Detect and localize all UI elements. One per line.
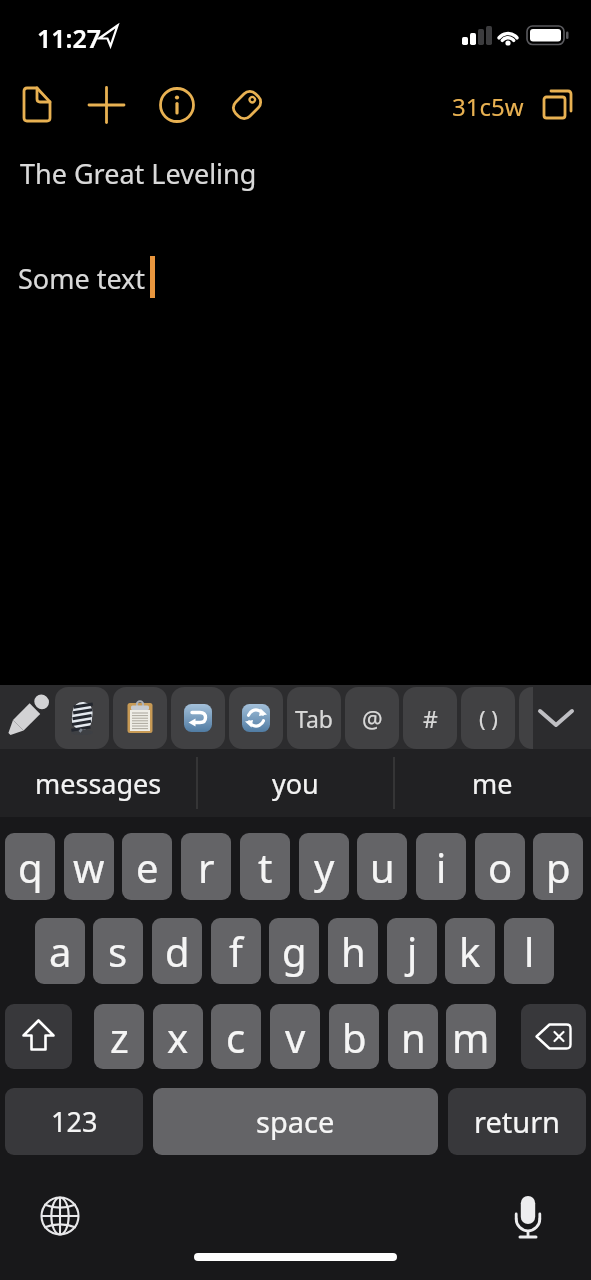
button[interactable]: space [153, 1088, 438, 1155]
button[interactable]: k [445, 918, 495, 984]
button[interactable]: 123 [5, 1088, 143, 1155]
staticText: messages [35, 765, 162, 802]
staticText: a [49, 924, 72, 978]
staticText: k [459, 924, 481, 978]
staticText: u [370, 840, 395, 894]
button[interactable]: n [388, 1004, 438, 1069]
staticText: s [108, 924, 128, 978]
button[interactable]: me [394, 749, 591, 817]
staticText: v [285, 1010, 306, 1064]
button[interactable]: s [93, 918, 143, 984]
button[interactable]: i [416, 833, 466, 900]
button[interactable] [229, 687, 283, 749]
button[interactable]: z [94, 1004, 144, 1069]
button[interactable] [113, 687, 167, 749]
button[interactable]: g [269, 918, 319, 984]
staticText: c [226, 1010, 246, 1064]
button[interactable]: messages [0, 749, 197, 817]
staticText: d [165, 924, 190, 978]
staticText: w [73, 840, 105, 894]
staticText: f [229, 924, 243, 978]
button[interactable]: ( ) [461, 687, 515, 749]
button[interactable]: @ [345, 687, 399, 749]
staticText: x [167, 1010, 189, 1064]
staticText: b [342, 1010, 367, 1064]
button[interactable] [519, 687, 573, 749]
button[interactable]: return [448, 1088, 586, 1155]
staticText: q [18, 840, 43, 894]
button[interactable]: r [181, 833, 231, 900]
button[interactable]: v [270, 1004, 320, 1069]
button[interactable]: l [504, 918, 554, 984]
staticText: m [452, 1010, 490, 1064]
button[interactable] [5, 1004, 72, 1069]
button[interactable]: u [357, 833, 407, 900]
staticText: r [198, 840, 215, 894]
staticText: Tab [295, 703, 333, 734]
staticText: 123 [51, 1103, 98, 1140]
staticText: e [136, 840, 159, 894]
button[interactable]: you [197, 749, 394, 817]
button[interactable]: c [211, 1004, 261, 1069]
staticText: you [272, 765, 319, 802]
button[interactable]: w [64, 833, 114, 900]
button[interactable] [28, 1184, 92, 1248]
button[interactable]: Tab [287, 687, 341, 749]
staticText: 11:27 [37, 21, 102, 55]
button[interactable] [18, 82, 58, 126]
staticText: t [258, 840, 273, 894]
button[interactable] [55, 687, 109, 749]
button[interactable] [171, 687, 225, 749]
staticText: ( ) [479, 703, 498, 733]
button[interactable]: b [329, 1004, 379, 1069]
button[interactable]: y [299, 833, 349, 900]
button[interactable]: h [328, 918, 378, 984]
staticText: y [314, 840, 335, 894]
button[interactable]: 31c5w [452, 90, 524, 123]
button[interactable] [533, 685, 591, 749]
button[interactable]: a [35, 918, 85, 984]
button[interactable] [0, 685, 55, 749]
button[interactable] [86, 82, 128, 126]
button[interactable]: o [475, 833, 525, 900]
staticText: return [474, 1102, 561, 1141]
staticText: o [488, 840, 513, 894]
button[interactable] [496, 1184, 560, 1248]
button[interactable]: f [211, 918, 261, 984]
staticText: The Great Leveling [20, 155, 257, 192]
staticText: Some text [18, 260, 146, 297]
button[interactable]: e [122, 833, 172, 900]
staticText: me [472, 765, 513, 802]
button[interactable]: q [5, 833, 55, 900]
button[interactable] [157, 82, 199, 126]
button[interactable] [540, 84, 580, 126]
staticText: z [110, 1010, 129, 1064]
staticText: i [436, 840, 447, 894]
staticText: h [341, 924, 366, 978]
staticText: j [407, 924, 418, 978]
staticText: g [282, 924, 307, 978]
staticText: @ [362, 703, 383, 734]
button[interactable]: p [533, 833, 583, 900]
button[interactable]: x [153, 1004, 203, 1069]
staticText: # [423, 703, 438, 734]
button[interactable] [521, 1004, 586, 1069]
button[interactable] [227, 82, 269, 126]
staticText: p [546, 840, 571, 894]
button[interactable]: d [152, 918, 202, 984]
button[interactable]: t [240, 833, 290, 900]
staticText: l [524, 924, 535, 978]
button[interactable]: # [403, 687, 457, 749]
button[interactable]: j [387, 918, 437, 984]
staticText: space [256, 1102, 335, 1141]
staticText: n [401, 1010, 426, 1064]
button[interactable]: m [446, 1004, 496, 1069]
